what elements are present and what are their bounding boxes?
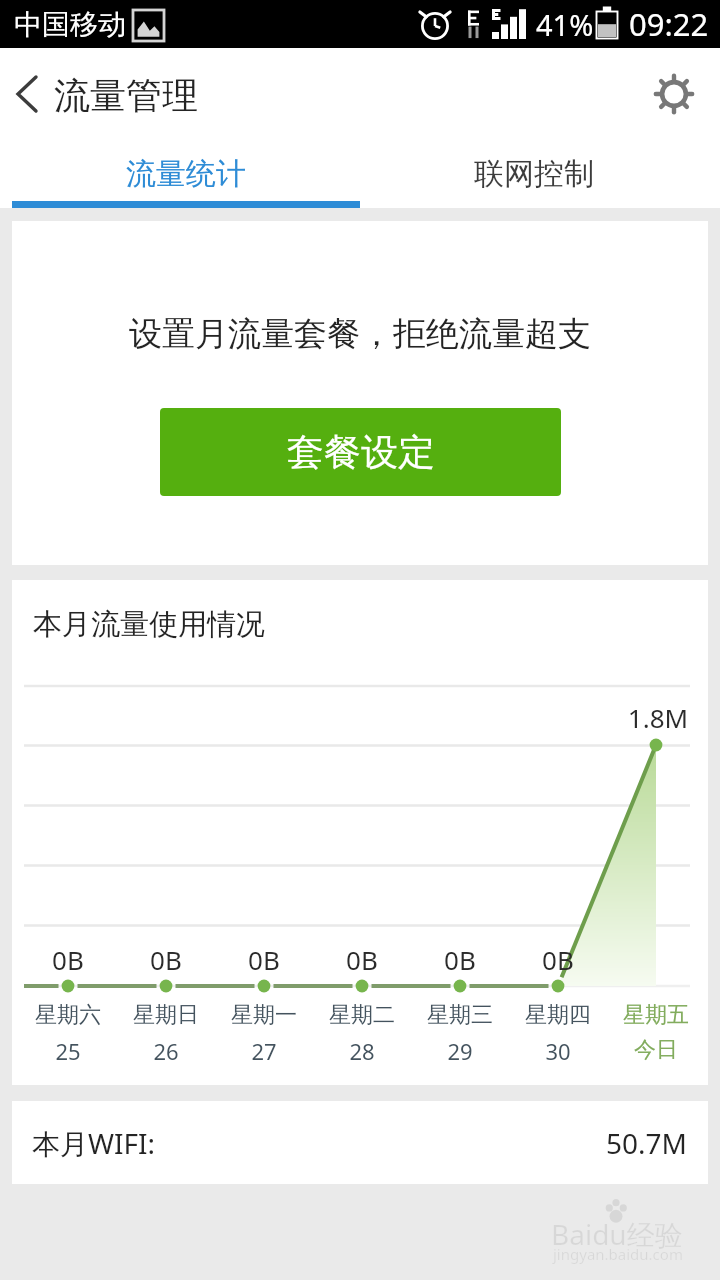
staticText: 09:22 bbox=[629, 3, 709, 45]
staticText: 设置月流量套餐，拒绝流量超支 bbox=[129, 313, 591, 355]
staticText: 0B bbox=[214, 942, 314, 977]
staticText: 0B bbox=[116, 942, 216, 977]
staticText: 联网控制 bbox=[474, 155, 594, 193]
button[interactable]: 联网控制 bbox=[360, 136, 708, 208]
staticText: 27 bbox=[214, 1036, 314, 1066]
staticText: 今日 bbox=[606, 1036, 706, 1064]
staticText: 星期三 bbox=[410, 1001, 510, 1029]
staticText: 0B bbox=[410, 942, 510, 977]
button[interactable]: Settings bbox=[650, 70, 698, 118]
staticText: 星期一 bbox=[214, 1001, 314, 1029]
staticText: 50.7M bbox=[606, 1124, 687, 1162]
button[interactable]: 套餐设定 bbox=[160, 408, 561, 496]
staticText: 0B bbox=[508, 942, 608, 977]
staticText: 本月WIFI: bbox=[32, 1124, 156, 1162]
staticText: 0B bbox=[312, 942, 412, 977]
staticText: 41% bbox=[536, 5, 594, 44]
staticText: 1.8M bbox=[608, 700, 708, 735]
staticText: 套餐设定 bbox=[287, 429, 435, 476]
staticText: 星期二 bbox=[312, 1001, 412, 1029]
staticText: 星期六 bbox=[18, 1001, 118, 1029]
staticText: 流量管理 bbox=[54, 73, 198, 118]
staticText: 25 bbox=[18, 1036, 118, 1066]
staticText: 星期日 bbox=[116, 1001, 216, 1029]
button[interactable]: Back bbox=[0, 67, 54, 121]
staticText: 流量统计 bbox=[126, 155, 246, 193]
staticText: Baidu经验 bbox=[551, 1215, 683, 1253]
staticText: 26 bbox=[116, 1036, 216, 1066]
button[interactable]: 本月WIFI: bbox=[12, 1101, 708, 1184]
staticText: 29 bbox=[410, 1036, 510, 1066]
staticText: 星期四 bbox=[508, 1001, 608, 1029]
staticText: 0B bbox=[18, 942, 118, 977]
staticText: 28 bbox=[312, 1036, 412, 1066]
staticText: 30 bbox=[508, 1036, 608, 1066]
staticText: 本月流量使用情况 bbox=[33, 606, 265, 643]
staticText: 星期五 bbox=[606, 1001, 706, 1029]
staticText: 中国移动 bbox=[14, 7, 126, 42]
button[interactable]: 流量统计 bbox=[12, 136, 360, 208]
staticText: jingyan.baidu.com bbox=[553, 1244, 683, 1264]
